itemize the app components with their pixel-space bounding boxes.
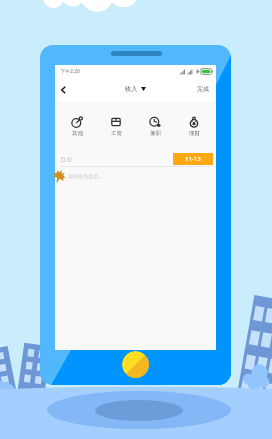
button[interactable]: 理财 [177,116,211,137]
button[interactable]: Home [122,351,149,378]
staticText: 完成 [197,85,209,93]
button[interactable]: 工资 [99,116,133,137]
button[interactable]: Back [55,78,71,102]
button[interactable]: 收入 [125,85,146,93]
button[interactable]: 11-13 [173,153,213,165]
button[interactable]: 兼职 [138,116,172,137]
button[interactable]: 其他 [60,116,94,137]
staticText: 添加备注信息... [68,173,103,180]
button[interactable]: 添加备注信息... [55,167,216,185]
staticText: 工资 [111,130,122,137]
staticText: 下午2:20 [60,68,80,75]
staticText: 收入 [125,85,138,93]
staticText: 其他 [72,130,83,137]
staticText: 0.0 [61,154,72,164]
staticText: 11-13 [185,155,201,163]
staticText: 理财 [189,130,200,137]
button[interactable]: 完成 [191,78,216,102]
staticText: 兼职 [150,130,161,137]
